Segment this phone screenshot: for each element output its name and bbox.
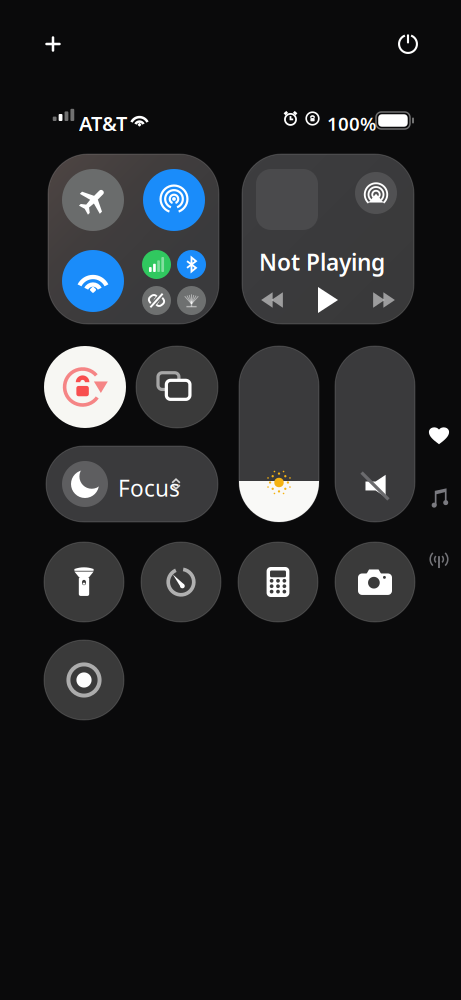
button[interactable]: Play [307,282,349,318]
button[interactable]: Camera [335,542,415,622]
button[interactable]: AirPlay [355,172,397,214]
button[interactable]: Rotation Lock [44,346,126,428]
button[interactable]: AirDrop [143,169,205,231]
button[interactable]: Home controls [424,420,454,450]
staticText: 100% [327,111,376,136]
button[interactable]: Now Playing [424,483,454,513]
button[interactable]: Power off [385,21,431,67]
button[interactable]: Screen Recording [44,640,124,720]
button[interactable]: Wi-Fi [62,250,124,312]
button[interactable]: VPN [177,286,206,315]
button[interactable]: Focus [46,446,218,522]
staticText: AT&T [79,110,127,137]
button[interactable]: Flashlight [44,542,124,622]
button[interactable]: Display Brightness [239,346,319,522]
button[interactable]: Personal Hotspot [142,286,171,315]
button[interactable]: Bluetooth [177,250,206,279]
button[interactable]: Airplane Mode [62,169,124,231]
button[interactable]: Timer [141,542,221,622]
staticText: Focus [118,473,180,503]
button[interactable]: Connectivity [424,546,454,576]
button[interactable]: Screen Mirroring [136,346,218,428]
button[interactable]: Rewind [251,282,293,318]
button[interactable]: Fast Forward [363,282,405,318]
button[interactable]: Volume [335,346,415,522]
button[interactable]: Add a control [30,21,76,67]
staticText: Not Playing [259,247,385,277]
button[interactable]: Cellular Data [142,250,171,279]
button[interactable]: Calculator [238,542,318,622]
